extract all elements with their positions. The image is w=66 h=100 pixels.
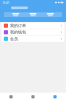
button[interactable]: 会员 <box>2 36 64 42</box>
staticText: 9:41 <box>3 0 10 5</box>
button[interactable]: 我的 <box>44 92 66 100</box>
button[interactable]: 发现 <box>22 92 44 100</box>
button[interactable]: 首页 <box>0 92 22 100</box>
staticText: 会员 <box>10 36 18 41</box>
staticText: 我的钱包 <box>10 30 26 35</box>
button[interactable]: 我的钱包 <box>2 29 64 35</box>
button[interactable]: 我的订单 <box>2 23 64 29</box>
staticText: 我的订单 <box>10 23 26 28</box>
